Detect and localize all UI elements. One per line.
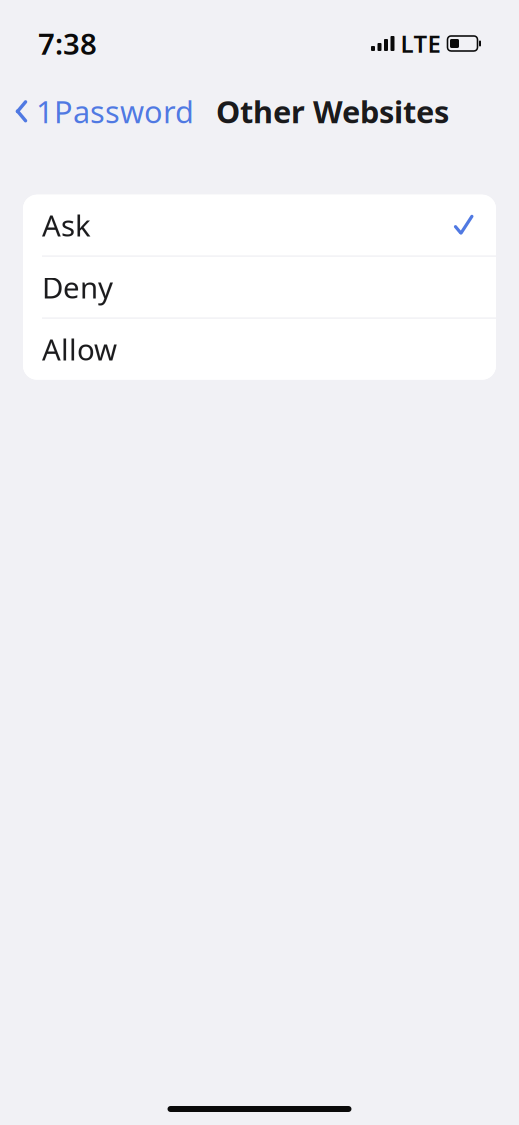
button[interactable]: Ask: [23, 195, 496, 256]
button[interactable]: 1Password: [14, 85, 198, 138]
staticText: 7:38: [38, 24, 97, 63]
staticText: Deny: [42, 268, 113, 307]
staticText: Ask: [42, 206, 91, 245]
button[interactable]: Deny: [23, 257, 496, 318]
staticText: 1Password: [36, 91, 194, 132]
staticText: Other Websites: [216, 91, 449, 132]
staticText: LTE: [400, 27, 440, 59]
staticText: Allow: [42, 330, 117, 369]
button[interactable]: Allow: [23, 319, 496, 380]
